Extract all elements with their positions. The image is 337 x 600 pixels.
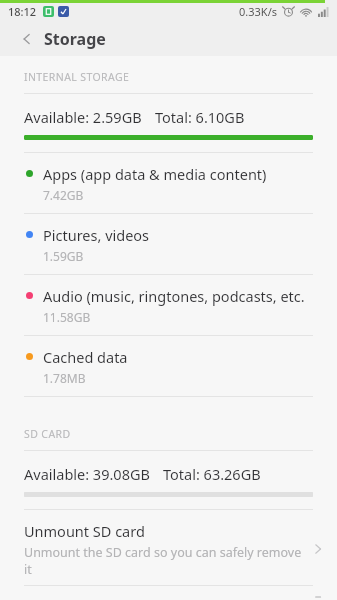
- staticText: 18:12: [8, 4, 37, 19]
- button[interactable]: Cached data: [0, 336, 337, 396]
- staticText: Unmount the SD card so you can safely re…: [24, 544, 303, 577]
- staticText: 1.78MB: [43, 370, 86, 386]
- staticText: INTERNAL STORAGE: [24, 70, 130, 84]
- staticText: Total: 6.10GB: [155, 107, 245, 127]
- button[interactable]: Back: [14, 26, 40, 52]
- staticText: Total: 63.26GB: [163, 464, 261, 484]
- staticText: Unmount SD card: [24, 521, 145, 541]
- staticText: Pictures, videos: [43, 225, 150, 245]
- staticText: 7.42GB: [43, 187, 84, 203]
- button[interactable]: Audio (music, ringtones, podcasts, etc.: [0, 275, 337, 335]
- staticText: Cached data: [43, 347, 128, 367]
- staticText: 0.33K/s: [239, 4, 277, 19]
- staticText: Available: 2.59GB: [24, 107, 142, 127]
- staticText: 11.58GB: [43, 309, 91, 325]
- staticText: Available: 39.08GB: [24, 464, 150, 484]
- button[interactable]: Pictures, videos: [0, 214, 337, 274]
- staticText: Storage: [44, 28, 106, 50]
- button[interactable]: Apps (app data & media content): [0, 153, 337, 213]
- staticText: 1.59GB: [43, 248, 84, 264]
- button[interactable]: Unmount SD card: [0, 510, 337, 585]
- staticText: Audio (music, ringtones, podcasts, etc.: [43, 286, 305, 306]
- staticText: Apps (app data & media content): [43, 164, 267, 184]
- staticText: SD CARD: [24, 427, 71, 441]
